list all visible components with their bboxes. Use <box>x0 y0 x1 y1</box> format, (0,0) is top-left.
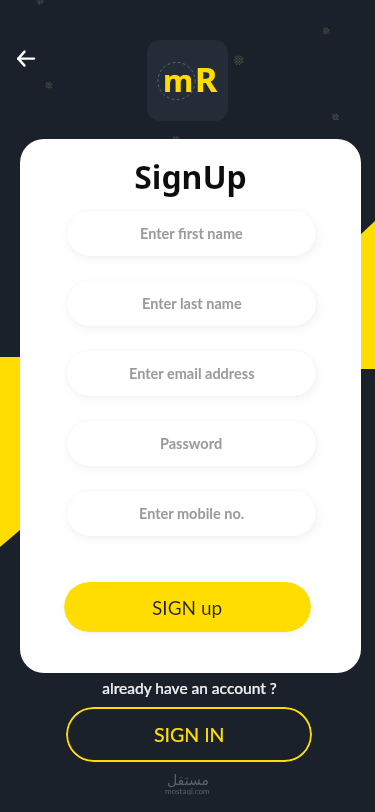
staticText: Enter mobile no. <box>139 505 245 522</box>
button[interactable]: Enter last name <box>67 281 316 326</box>
staticText: Enter first name <box>140 225 243 242</box>
button[interactable]: Back <box>6 38 48 80</box>
button[interactable]: Password <box>67 421 316 466</box>
staticText: Enter email address <box>129 365 255 382</box>
button[interactable]: SIGN up <box>64 582 311 632</box>
staticText: R <box>195 56 218 102</box>
button[interactable]: Enter first name <box>67 211 316 256</box>
staticText: مستقل <box>167 772 209 788</box>
button[interactable]: Enter mobile no. <box>67 491 316 536</box>
staticText: Password <box>160 435 223 452</box>
staticText: SignUp <box>20 155 361 199</box>
button[interactable]: SIGN IN <box>66 707 312 762</box>
button[interactable]: App logo <box>147 40 228 121</box>
staticText: Enter last name <box>142 295 242 312</box>
staticText: SIGN up <box>152 596 223 619</box>
staticText: SIGN IN <box>154 723 225 746</box>
staticText: m <box>163 59 194 101</box>
staticText: already have an account ? <box>2 679 375 698</box>
button[interactable]: Enter email address <box>67 351 316 396</box>
staticText: mostaql.com <box>165 786 210 796</box>
